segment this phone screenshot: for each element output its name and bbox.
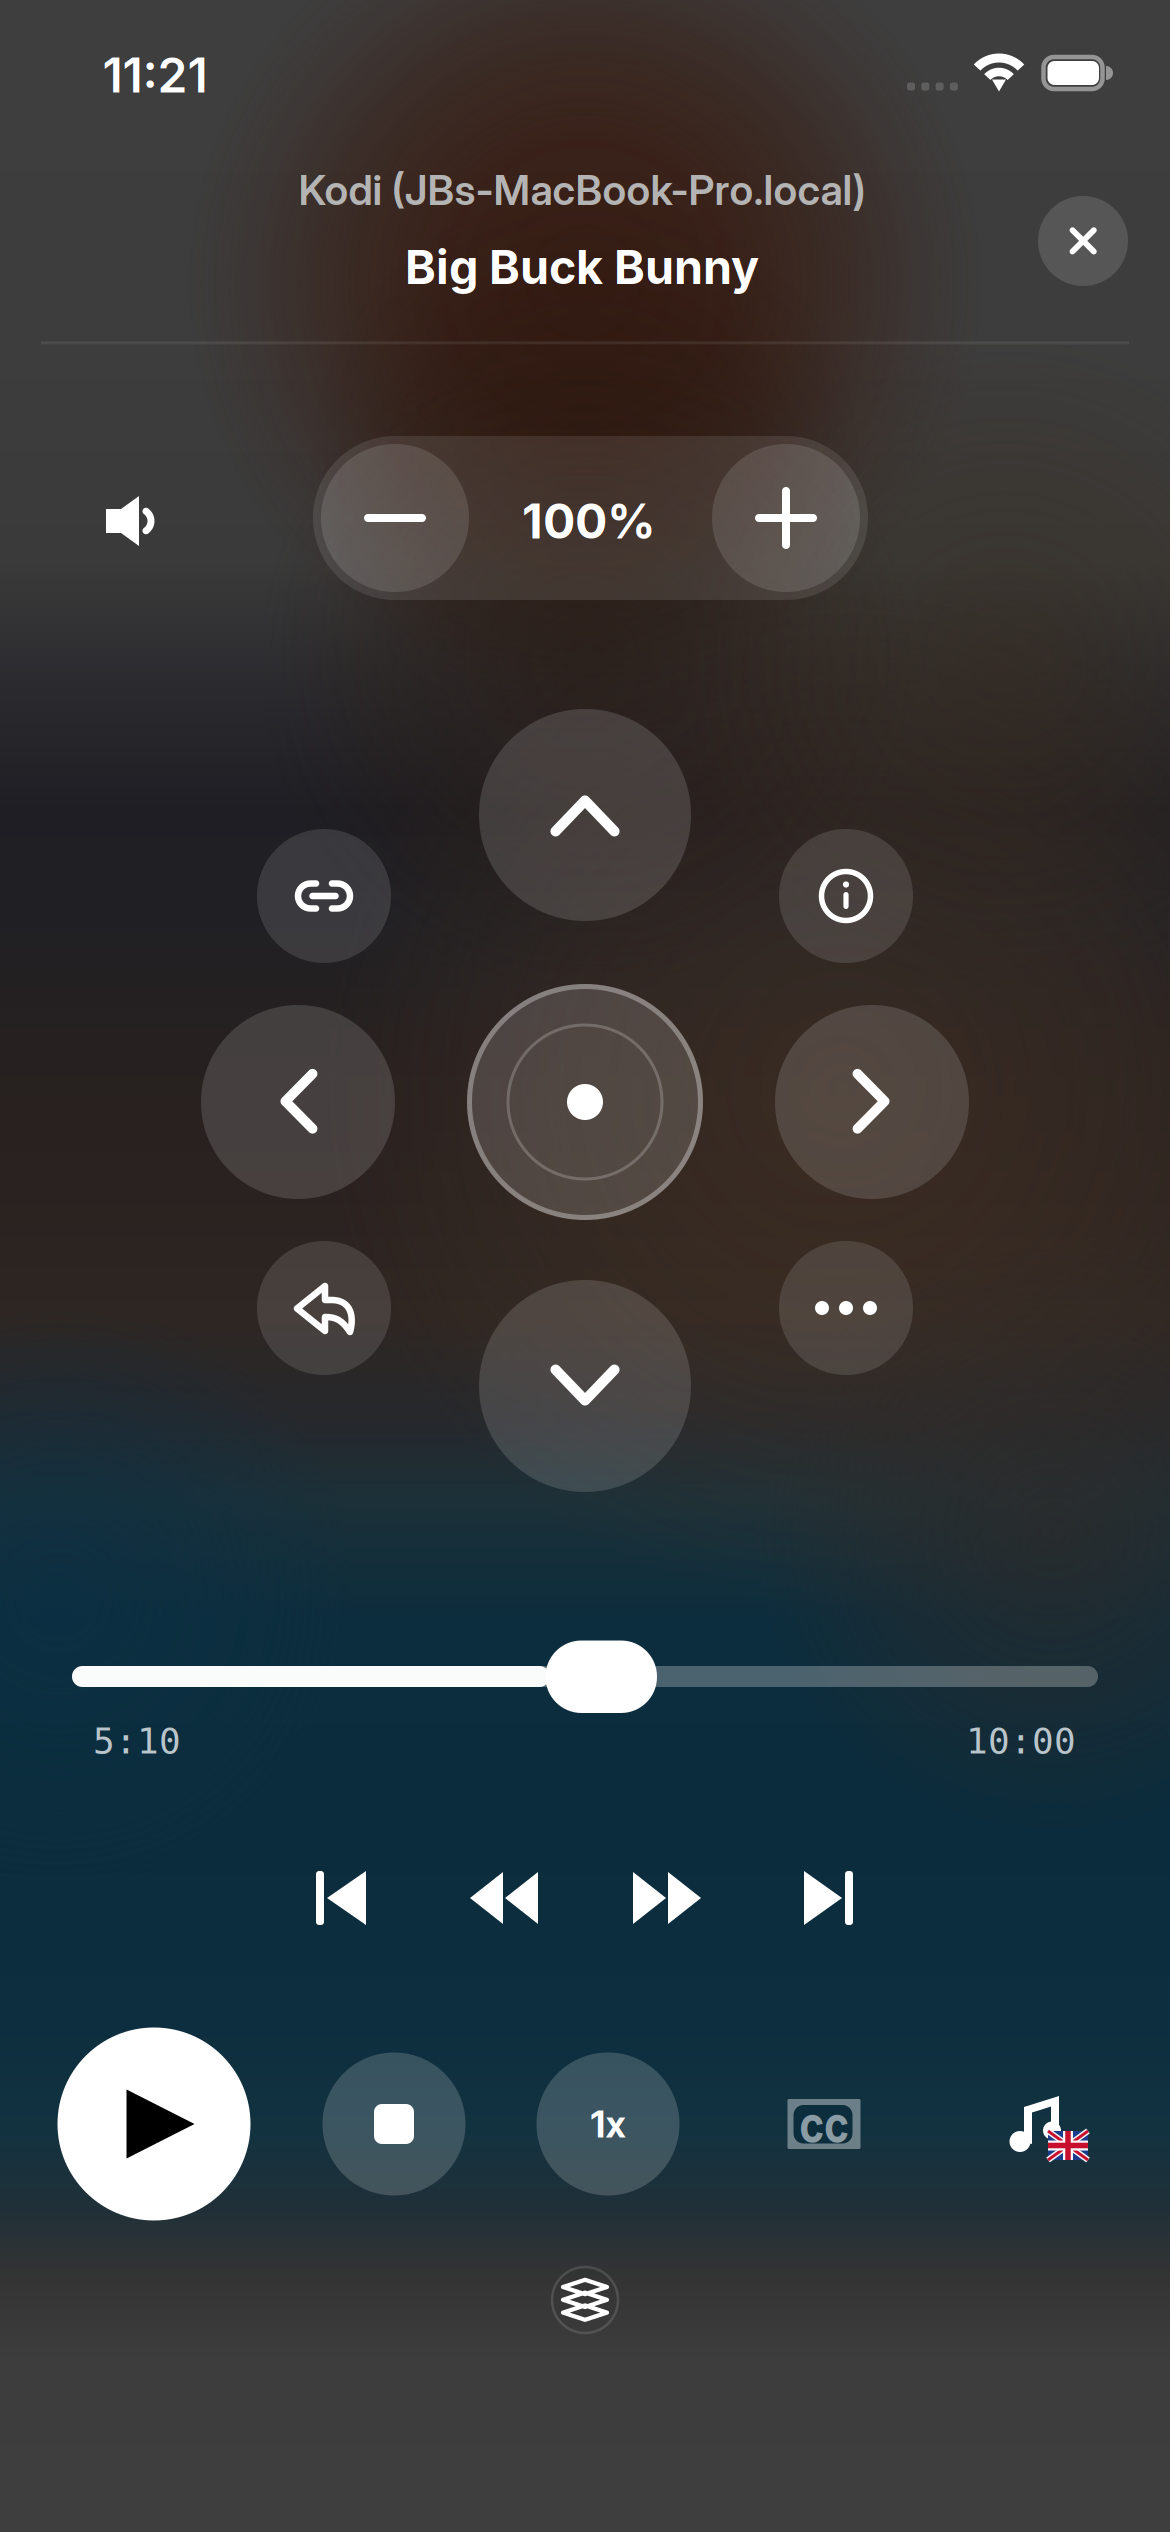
button[interactable]: Previous bbox=[286, 1843, 396, 1953]
button[interactable]: Left bbox=[201, 1005, 395, 1199]
button[interactable]: Stop bbox=[322, 2052, 465, 2195]
button[interactable]: Playback speed bbox=[536, 2052, 679, 2195]
staticText: 11:21 bbox=[102, 46, 207, 104]
button[interactable]: Layers bbox=[552, 2267, 618, 2333]
button[interactable]: Play bbox=[57, 2027, 250, 2220]
button[interactable]: Subtitles bbox=[769, 2069, 879, 2179]
button[interactable]: Right bbox=[775, 1005, 969, 1199]
staticText: 10:00 bbox=[966, 1720, 1076, 1762]
staticText: 5:10 bbox=[93, 1720, 181, 1762]
button[interactable]: Next bbox=[773, 1843, 883, 1953]
staticText: Kodi (JBs-MacBook-Pro.local) bbox=[298, 165, 865, 215]
button[interactable]: Audio language bbox=[983, 2058, 1103, 2178]
staticText: cc bbox=[793, 2092, 855, 2156]
staticText: 1x bbox=[590, 2101, 625, 2147]
button[interactable]: Select bbox=[467, 984, 703, 1220]
staticText: Big Buck Bunny bbox=[405, 239, 759, 295]
button[interactable]: Info bbox=[779, 829, 913, 963]
button[interactable]: Volume down bbox=[321, 444, 469, 592]
button[interactable]: Link bbox=[257, 829, 391, 963]
button[interactable]: Fast forward bbox=[612, 1843, 722, 1953]
button[interactable]: More bbox=[779, 1241, 913, 1375]
staticText: 100% bbox=[522, 492, 656, 550]
button[interactable]: Close bbox=[1038, 196, 1128, 286]
button[interactable]: Rewind bbox=[449, 1843, 559, 1953]
button[interactable]: Volume up bbox=[712, 444, 860, 592]
button[interactable]: Down bbox=[479, 1280, 691, 1492]
button[interactable]: Back bbox=[257, 1241, 391, 1375]
button[interactable]: Up bbox=[479, 709, 691, 921]
